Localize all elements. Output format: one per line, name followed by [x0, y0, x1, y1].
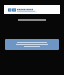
other: Logo [8, 8, 16, 12]
button[interactable] [5, 39, 59, 50]
button[interactable]: Logo [4, 5, 60, 14]
